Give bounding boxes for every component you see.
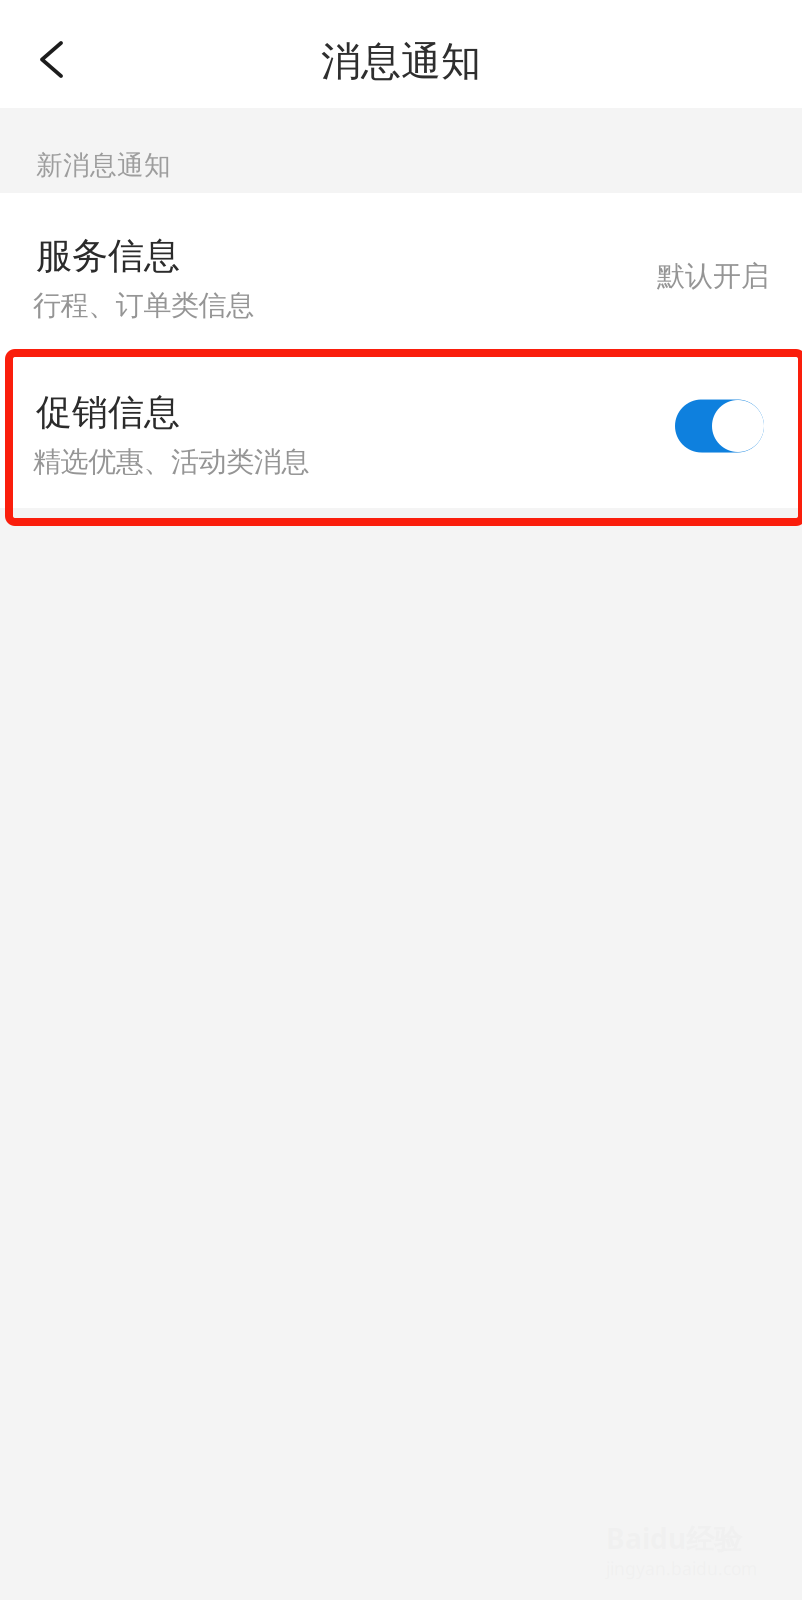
staticText: 消息通知 [321,37,481,86]
staticText: 促销信息 [36,390,180,435]
staticText: 新消息通知 [36,149,171,182]
staticText: 默认开启 [657,259,769,293]
button[interactable]: 服务信息 [0,193,802,350]
staticText: 行程、订单类信息 [33,288,254,323]
button[interactable]: Back [0,0,78,108]
staticText: 精选优惠、活动类消息 [33,445,309,479]
staticText: 服务信息 [36,234,180,278]
button[interactable]: 促销信息 [0,350,802,508]
